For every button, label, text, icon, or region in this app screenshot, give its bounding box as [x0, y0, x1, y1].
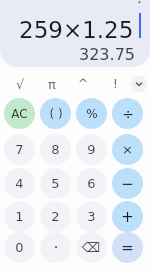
staticText: ÷	[122, 106, 134, 122]
button[interactable]: =	[112, 232, 143, 263]
button[interactable]: Backspace	[76, 232, 107, 263]
staticText: √	[16, 77, 25, 92]
staticText: ·	[53, 238, 59, 257]
button[interactable]: 2	[40, 201, 71, 232]
staticText: 8	[51, 142, 60, 157]
staticText: ^	[78, 77, 89, 91]
button[interactable]: ×	[112, 134, 143, 165]
staticText: 6	[87, 176, 96, 191]
staticText: π	[48, 77, 56, 92]
staticText: 1	[15, 209, 24, 224]
button[interactable]: −	[112, 168, 143, 199]
staticText: ⌫	[82, 240, 101, 255]
button[interactable]: +	[112, 201, 143, 232]
button[interactable]: 4	[4, 168, 35, 199]
staticText: −	[121, 175, 134, 192]
button[interactable]: 1	[4, 201, 35, 232]
staticText: 3	[87, 209, 96, 224]
staticText: 0	[15, 240, 24, 255]
staticText: 7	[15, 142, 24, 157]
staticText: +	[121, 208, 134, 225]
staticText: 5	[51, 176, 60, 191]
staticText: =	[121, 239, 134, 256]
staticText: 323.75	[79, 45, 135, 64]
button[interactable]: 7	[4, 134, 35, 165]
staticText: !	[113, 77, 118, 91]
button[interactable]: AC	[4, 98, 35, 129]
staticText: 259×1.25	[19, 17, 134, 44]
staticText: %	[86, 107, 98, 121]
button[interactable]: 8	[40, 134, 71, 165]
button[interactable]: Show more functions	[131, 76, 147, 92]
button[interactable]: 5	[40, 168, 71, 199]
staticText: 4	[15, 176, 24, 191]
button[interactable]: 0	[4, 232, 35, 263]
button[interactable]: ·	[40, 232, 71, 263]
button[interactable]: 6	[76, 168, 107, 199]
button[interactable]: √	[9, 73, 31, 95]
staticText: AC	[11, 107, 28, 121]
button[interactable]: 3	[76, 201, 107, 232]
staticText: ( )	[49, 107, 63, 121]
staticText: ×	[122, 142, 133, 157]
staticText: 9	[87, 142, 96, 157]
button[interactable]: ÷	[112, 98, 143, 129]
button[interactable]: ^	[72, 73, 94, 95]
button[interactable]: !	[104, 73, 126, 95]
button[interactable]: %	[76, 98, 107, 129]
button[interactable]: 9	[76, 134, 107, 165]
button[interactable]: More options	[133, 0, 146, 6]
staticText: 2	[51, 209, 60, 224]
button[interactable]: ( )	[40, 98, 71, 129]
button[interactable]: π	[41, 73, 63, 95]
